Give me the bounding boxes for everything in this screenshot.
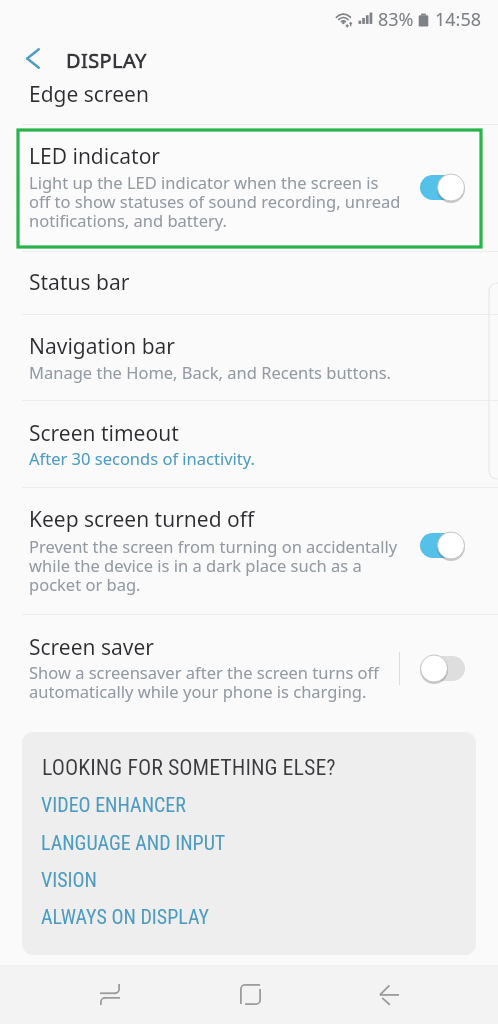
- staticText: VISION: [41, 868, 97, 891]
- staticText: Manage the Home, Back, and Recents butto…: [29, 361, 392, 383]
- staticText: Edge screen: [29, 86, 149, 109]
- staticText: Show a screensaver after the screen turn…: [29, 661, 379, 703]
- staticText: 14:58: [435, 7, 482, 32]
- staticText: After 30 seconds of inactivity.: [29, 447, 255, 469]
- staticText: Prevent the screen from turning on accid…: [29, 535, 398, 596]
- button[interactable]: LED indicator: [18, 130, 481, 247]
- staticText: LANGUAGE AND INPUT: [41, 831, 226, 854]
- button[interactable]: [0, 252, 498, 314]
- staticText: Light up the LED indicator when the scre…: [29, 171, 401, 232]
- button[interactable]: [0, 488, 498, 614]
- button[interactable]: Switch, on: [420, 531, 466, 560]
- staticText: DISPLAY: [66, 47, 147, 74]
- staticText: Keep screen turned off: [29, 505, 255, 534]
- button[interactable]: Switch, off: [419, 654, 465, 683]
- staticText: ALWAYS ON DISPLAY: [41, 905, 210, 928]
- button[interactable]: Recent apps: [44, 965, 176, 1024]
- staticText: Status bar: [29, 268, 130, 297]
- staticText: LED indicator: [29, 142, 161, 171]
- button[interactable]: VISION: [41, 868, 97, 891]
- button[interactable]: Switch, on: [420, 173, 466, 202]
- button[interactable]: VIDEO ENHANCER: [41, 793, 186, 816]
- button[interactable]: Navigate up: [11, 36, 55, 80]
- button[interactable]: LANGUAGE AND INPUT: [41, 831, 226, 854]
- staticText: Screen timeout: [29, 419, 179, 448]
- staticText: LOOKING FOR SOMETHING ELSE?: [42, 755, 336, 781]
- staticText: Screen saver: [29, 633, 155, 662]
- button[interactable]: Edge screen: [0, 86, 498, 124]
- button[interactable]: [0, 401, 498, 487]
- staticText: Navigation bar: [29, 332, 176, 361]
- button[interactable]: Back: [323, 965, 455, 1024]
- button[interactable]: [0, 615, 498, 715]
- button[interactable]: Home: [184, 965, 316, 1024]
- button[interactable]: [0, 315, 498, 400]
- staticText: VIDEO ENHANCER: [41, 793, 186, 816]
- staticText: 83%: [378, 7, 414, 32]
- button[interactable]: ALWAYS ON DISPLAY: [41, 905, 210, 928]
